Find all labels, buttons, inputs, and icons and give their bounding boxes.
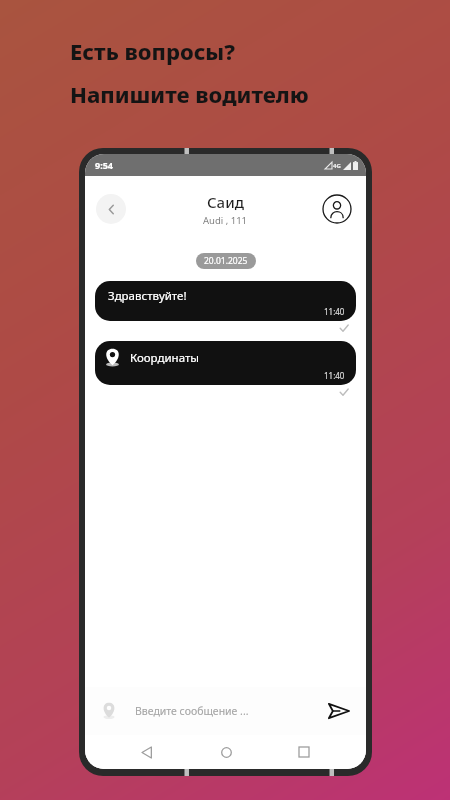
staticText: Введите сообщение ...	[135, 704, 249, 718]
button[interactable]: Назад	[130, 735, 164, 769]
staticText: Саид	[207, 192, 244, 212]
button[interactable]: Отправить координаты	[97, 699, 121, 723]
staticText: 20.01.2025	[204, 255, 248, 267]
staticText: 11:40	[324, 370, 345, 381]
staticText: 4G	[333, 162, 341, 170]
button[interactable]: Здравствуйте!	[95, 281, 356, 321]
staticText: Здравствуйте!	[108, 288, 187, 304]
staticText: Координаты	[130, 350, 200, 366]
button[interactable]: Отправить	[324, 696, 354, 726]
button[interactable]: Координаты	[95, 341, 356, 385]
button[interactable]: Профиль	[322, 194, 352, 224]
button[interactable]: Назад	[96, 194, 126, 224]
staticText: Есть вопросы?	[70, 36, 236, 66]
staticText: Напишите водителю	[70, 79, 309, 109]
staticText: 9:54	[95, 159, 113, 171]
staticText: 11:40	[324, 306, 345, 317]
button[interactable]: Обзор	[287, 735, 321, 769]
button[interactable]: Домой	[209, 735, 243, 769]
staticText: Audi , 111	[203, 214, 248, 227]
button[interactable]: Введите сообщение ...	[135, 704, 324, 718]
